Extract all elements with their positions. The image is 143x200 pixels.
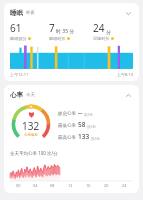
staticText: -- bbox=[78, 108, 83, 117]
button[interactable]: 睡眠 bbox=[4, 3, 139, 81]
staticText: 睡眠时长 bbox=[49, 36, 66, 41]
staticText: 心率偏高 bbox=[24, 133, 38, 137]
staticText: 20 bbox=[104, 183, 109, 188]
staticText: 分 bbox=[106, 29, 111, 35]
button[interactable]: 心率 bbox=[4, 85, 139, 193]
staticText: 次/分 bbox=[87, 124, 97, 129]
staticText: 静息心率 bbox=[58, 111, 76, 117]
staticText: 58 bbox=[78, 120, 86, 129]
staticText: 16 bbox=[86, 183, 91, 188]
button[interactable]: Collapse sleep bbox=[123, 8, 133, 18]
staticText: 睡眠 bbox=[10, 9, 23, 17]
button[interactable]: Expand heart rate bbox=[123, 90, 133, 100]
staticText: 上午12:11 bbox=[10, 72, 29, 77]
staticText: 全天平均心率 100 次/分 bbox=[10, 150, 58, 156]
staticText: 最高心率 bbox=[58, 135, 76, 141]
staticText: 次/分 bbox=[91, 136, 101, 141]
staticText: 24 bbox=[93, 21, 105, 35]
staticText: 上午8:10 bbox=[117, 72, 133, 77]
staticText: 04 bbox=[33, 183, 38, 188]
staticText: 7 bbox=[49, 21, 55, 35]
staticText: 最低心率 bbox=[58, 123, 76, 129]
staticText: 61 bbox=[10, 21, 22, 35]
staticText: 08 bbox=[50, 183, 55, 188]
staticText: 次/分 bbox=[84, 112, 94, 117]
staticText: 昨夜 bbox=[26, 10, 35, 16]
staticText: 132 bbox=[22, 119, 40, 133]
staticText: 时 35 分 bbox=[56, 28, 75, 35]
staticText: 24 bbox=[122, 183, 127, 188]
staticText: 心率 bbox=[10, 91, 23, 99]
staticText: 133 bbox=[78, 132, 90, 141]
staticText: 今天 bbox=[26, 92, 35, 98]
staticText: 睡眠得分 bbox=[10, 36, 27, 41]
staticText: 12 bbox=[68, 183, 73, 188]
staticText: 深睡时长 bbox=[93, 36, 110, 41]
staticText: 00 bbox=[16, 183, 21, 188]
